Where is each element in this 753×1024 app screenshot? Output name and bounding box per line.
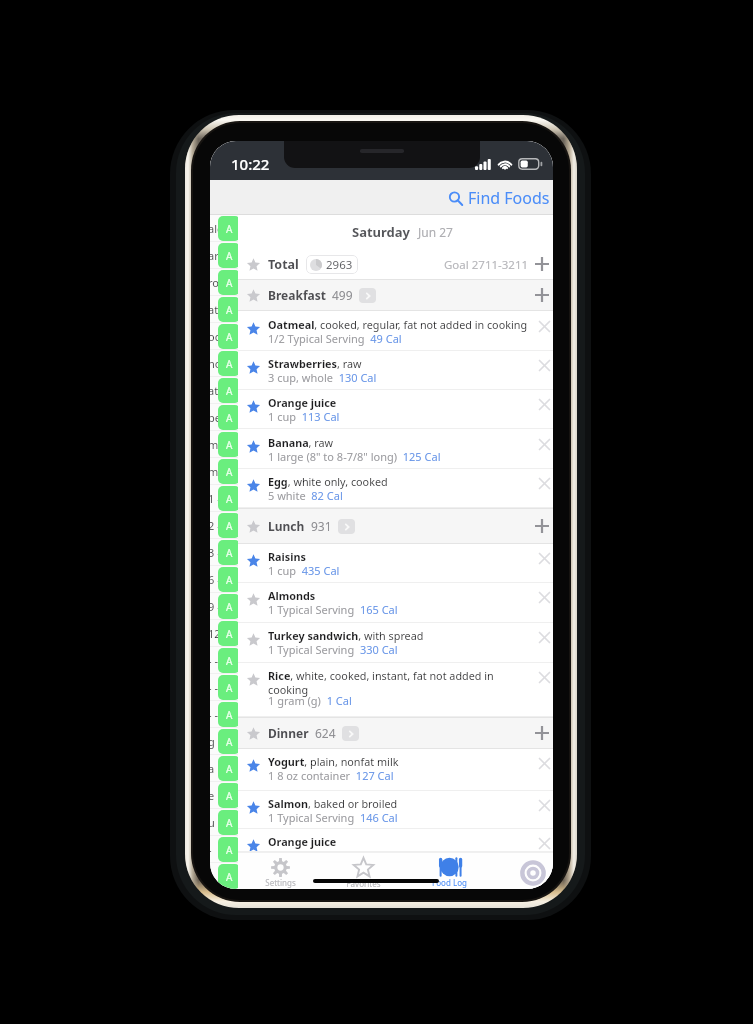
button[interactable]: A xyxy=(218,567,240,592)
button[interactable]: Orange juice xyxy=(238,829,553,852)
button[interactable]: Lunch xyxy=(238,508,553,544)
button[interactable]: Strawberries, raw xyxy=(238,351,553,390)
staticText: 2963 xyxy=(326,257,353,273)
button[interactable]: Food Log xyxy=(407,854,491,889)
button[interactable]: Settings xyxy=(238,854,322,889)
button[interactable]: A xyxy=(218,297,240,322)
button[interactable]: A xyxy=(218,216,240,241)
button[interactable]: Remove Strawberries xyxy=(535,356,553,374)
staticText: A xyxy=(226,681,233,695)
staticText: Jun 27 xyxy=(418,224,453,240)
staticText: A xyxy=(226,870,233,884)
button[interactable]: A xyxy=(218,405,240,430)
staticText: 1 Typical Serving 330 Cal xyxy=(268,642,398,657)
button[interactable]: Total xyxy=(238,249,553,280)
button[interactable]: Remove Oatmeal xyxy=(535,317,553,335)
button[interactable]: Rice, white, cooked, instant, fat not ad… xyxy=(238,663,553,717)
button[interactable]: Remove Almonds xyxy=(535,588,553,606)
button[interactable]: A xyxy=(218,378,240,403)
staticText: A xyxy=(226,600,233,614)
staticText: u xyxy=(210,815,215,830)
button[interactable]: Add to Dinner xyxy=(530,722,553,745)
staticText: A xyxy=(226,384,233,398)
button[interactable]: A xyxy=(218,351,240,376)
button[interactable]: Remove Banana xyxy=(535,435,553,453)
button[interactable]: A xyxy=(218,459,240,484)
button[interactable]: Salmon, baked or broiled xyxy=(238,791,553,829)
button[interactable]: A xyxy=(218,621,240,646)
button[interactable]: A xyxy=(218,270,240,295)
staticText: 3 cup, whole 130 Cal xyxy=(268,370,377,385)
button[interactable]: Remove Orange juice xyxy=(535,834,553,852)
staticText: Strawberries, raw xyxy=(268,356,535,371)
button[interactable]: Banana, raw xyxy=(238,430,553,469)
button[interactable]: A xyxy=(218,675,240,700)
staticText: A xyxy=(226,222,233,236)
staticText: 624 xyxy=(315,725,336,741)
button[interactable]: Open Lunch xyxy=(338,519,355,534)
staticText: 1 Typical Serving 146 Cal xyxy=(268,810,398,825)
staticText: Rice, white, cooked, instant, fat not ad… xyxy=(268,668,535,697)
button[interactable]: A xyxy=(218,783,240,808)
button[interactable]: A xyxy=(218,810,240,835)
button[interactable]: A xyxy=(218,648,240,673)
staticText: a xyxy=(210,761,215,776)
staticText: 1 cup 113 Cal xyxy=(268,409,340,424)
button[interactable]: Raisins xyxy=(238,544,553,583)
staticText: - - xyxy=(210,653,218,668)
button[interactable]: A xyxy=(218,243,240,268)
staticText: A xyxy=(226,735,233,749)
button[interactable]: A xyxy=(218,837,240,862)
staticText: 3 - xyxy=(210,545,221,560)
button[interactable]: Remove Raisins xyxy=(535,549,553,567)
button[interactable]: A xyxy=(218,729,240,754)
staticText: Lunch xyxy=(268,518,305,534)
button[interactable]: A xyxy=(218,702,240,727)
button[interactable]: A xyxy=(218,324,240,349)
button[interactable]: Turkey sandwich, with spread xyxy=(238,623,553,663)
button[interactable]: A xyxy=(218,432,240,457)
button[interactable]: Open Breakfast xyxy=(359,288,376,303)
staticText: Total xyxy=(268,256,299,273)
button[interactable]: Dinner xyxy=(238,717,553,749)
button[interactable]: Remove Egg xyxy=(535,474,553,492)
staticText: Almonds xyxy=(268,588,535,603)
button[interactable]: Remove Yogurt xyxy=(535,754,553,772)
staticText: 1 - xyxy=(210,491,221,506)
staticText: Orange juice xyxy=(268,395,535,410)
button[interactable]: Breakfast xyxy=(238,279,553,311)
button[interactable]: Remove Turkey sandwich xyxy=(535,628,553,646)
button[interactable]: A xyxy=(218,594,240,619)
button[interactable]: Open Dinner xyxy=(342,726,359,741)
staticText: 931 xyxy=(311,518,332,534)
button[interactable]: Remove Salmon xyxy=(535,796,553,814)
staticText: 10:22 xyxy=(231,154,270,174)
button[interactable]: A xyxy=(218,756,240,781)
staticText: - xyxy=(210,869,212,884)
staticText: m xyxy=(210,437,219,452)
button[interactable]: Almonds xyxy=(238,583,553,623)
button[interactable]: Find Foods xyxy=(445,182,553,214)
button[interactable]: Yogurt, plain, nonfat milk xyxy=(238,749,553,791)
button[interactable]: Favorites xyxy=(321,854,405,889)
staticText: ar xyxy=(210,248,219,263)
button[interactable]: Oatmeal, cooked, regular, fat not added … xyxy=(238,312,553,351)
staticText: A xyxy=(226,330,233,344)
button[interactable]: Egg, white only, cooked xyxy=(238,469,553,508)
button[interactable]: A xyxy=(218,864,240,889)
staticText: ho xyxy=(210,356,222,371)
button[interactable]: A xyxy=(218,513,240,538)
button[interactable]: Add to Total xyxy=(530,253,553,276)
staticText: 1 cup 435 Cal xyxy=(268,563,340,578)
button[interactable]: Orange juice xyxy=(238,390,553,429)
button[interactable]: A xyxy=(218,540,240,565)
button[interactable]: Add to Breakfast xyxy=(530,284,553,307)
button[interactable]: Remove Orange juice xyxy=(535,395,553,413)
button[interactable]: Add to Lunch xyxy=(530,515,553,538)
button[interactable]: Remove Rice xyxy=(535,668,553,686)
staticText: A xyxy=(226,789,233,803)
staticText: Turkey sandwich, with spread xyxy=(268,628,535,643)
button[interactable]: A xyxy=(218,486,240,511)
staticText: A xyxy=(226,816,233,830)
button[interactable]: Goals xyxy=(491,854,553,889)
